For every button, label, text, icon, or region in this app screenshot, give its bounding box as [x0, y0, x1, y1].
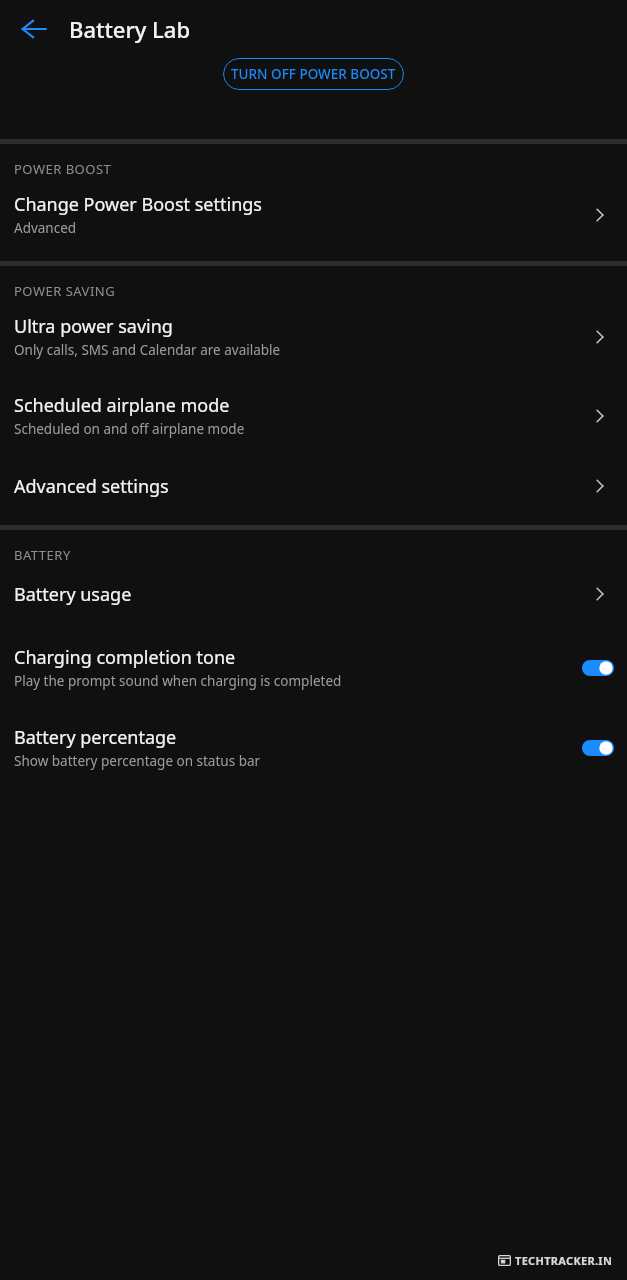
staticText: POWER SAVING — [14, 282, 116, 300]
other: Open — [586, 402, 614, 430]
staticText: Only calls, SMS and Calendar are availab… — [14, 341, 281, 359]
button[interactable]: Advanced settings — [0, 460, 627, 525]
button[interactable]: Toggle — [582, 660, 614, 676]
staticText: Show battery percentage on status bar — [14, 752, 261, 770]
staticText: Advanced settings — [14, 474, 169, 499]
staticText: Scheduled on and off airplane mode — [14, 420, 245, 438]
button[interactable]: Change Power Boost settings — [0, 178, 627, 261]
staticText: Scheduled airplane mode — [14, 393, 230, 418]
button[interactable]: Back — [8, 3, 60, 55]
staticText: Battery Lab — [69, 14, 191, 44]
staticText: Play the prompt sound when charging is c… — [14, 672, 342, 690]
button[interactable]: Ultra power saving — [0, 300, 627, 380]
staticText: Battery usage — [14, 582, 132, 607]
button[interactable]: Scheduled airplane mode — [0, 380, 627, 460]
button[interactable]: Battery percentage — [0, 714, 627, 776]
staticText: Battery percentage — [14, 725, 177, 750]
button[interactable]: Charging completion tone — [0, 634, 627, 714]
staticText: Ultra power saving — [14, 314, 173, 339]
staticText: TURN OFF POWER BOOST — [231, 65, 396, 83]
staticText: Advanced — [14, 219, 77, 237]
other: Open — [586, 323, 614, 351]
other: Open — [586, 201, 614, 229]
button[interactable]: Toggle — [582, 740, 614, 756]
staticText: Change Power Boost settings — [14, 192, 262, 217]
other: Open — [586, 580, 614, 608]
staticText: Charging completion tone — [14, 645, 236, 670]
button[interactable]: TURN OFF POWER BOOST — [223, 58, 404, 90]
staticText: POWER BOOST — [14, 160, 112, 178]
other: Open — [586, 472, 614, 500]
button[interactable]: Battery usage — [0, 564, 627, 634]
staticText: BATTERY — [14, 546, 71, 564]
staticText: TECHTRACKER.IN — [515, 1253, 613, 1268]
